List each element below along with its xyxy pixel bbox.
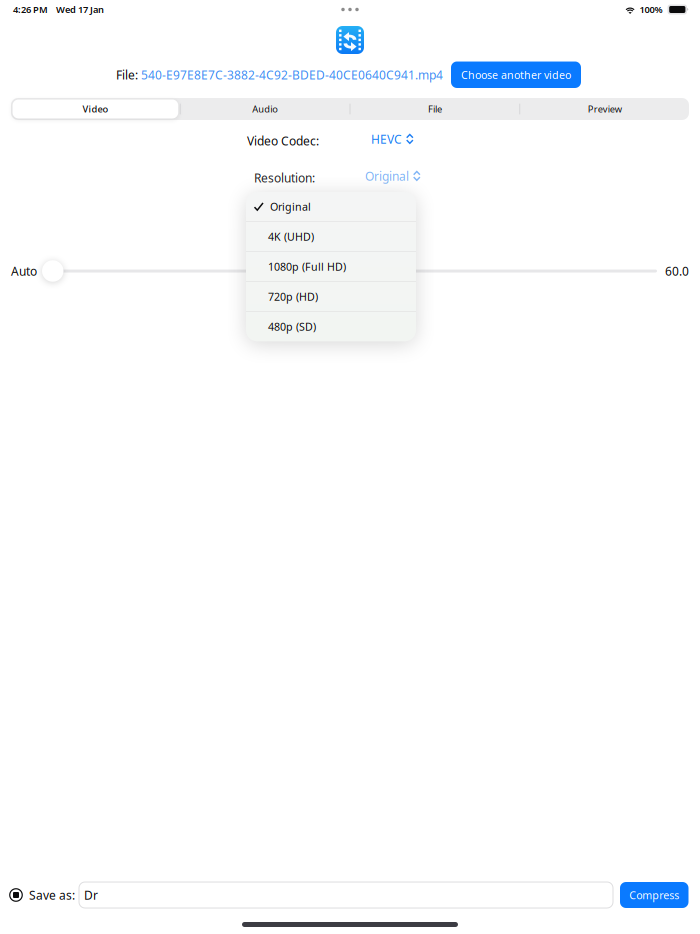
button[interactable]: Video [11, 98, 180, 120]
button[interactable]: 720p (HD) [246, 282, 416, 311]
staticText: 540-E97E8E7C-3882-4C92-BDED-40CE0640C941… [141, 67, 443, 83]
staticText: Choose another video [461, 68, 571, 82]
staticText: 1080p (Full HD) [268, 260, 346, 274]
staticText: 60.0 [665, 263, 689, 279]
staticText: File [428, 103, 442, 115]
button[interactable]: HEVC [371, 129, 414, 149]
staticText: Preview [588, 103, 622, 115]
staticText: File: [116, 67, 138, 83]
button[interactable]: 480p (SD) [246, 312, 416, 341]
staticText: Compress [629, 888, 679, 902]
staticText: 720p (HD) [268, 290, 318, 304]
staticText: Resolution: [254, 170, 315, 186]
button[interactable]: 1080p (Full HD) [246, 252, 416, 281]
staticText: 4K (UHD) [268, 230, 314, 244]
button[interactable]: Choose another video [451, 61, 581, 88]
button[interactable]: Compress [620, 882, 688, 908]
staticText: Original [365, 168, 409, 184]
staticText: Audio [252, 103, 278, 115]
staticText: 4:26 PM [13, 3, 48, 16]
staticText: Original [270, 200, 311, 214]
staticText: Wed 17 Jan [56, 3, 104, 16]
staticText: Video [82, 103, 108, 115]
button[interactable]: Audio [181, 98, 350, 120]
staticText: Save as: [29, 887, 75, 903]
staticText: HEVC [371, 131, 402, 147]
button[interactable]: Original [246, 192, 416, 221]
staticText: 480p (SD) [268, 320, 316, 334]
staticText: Dr [84, 887, 98, 903]
staticText: 100% [639, 3, 662, 16]
button[interactable]: Original [365, 166, 421, 186]
button[interactable]: Output folder [0, 888, 23, 902]
button[interactable]: Preview [520, 98, 689, 120]
button[interactable]: File [350, 98, 519, 120]
button[interactable]: 4K (UHD) [246, 222, 416, 251]
staticText: Auto [11, 263, 37, 279]
staticText: Video Codec: [247, 133, 319, 149]
